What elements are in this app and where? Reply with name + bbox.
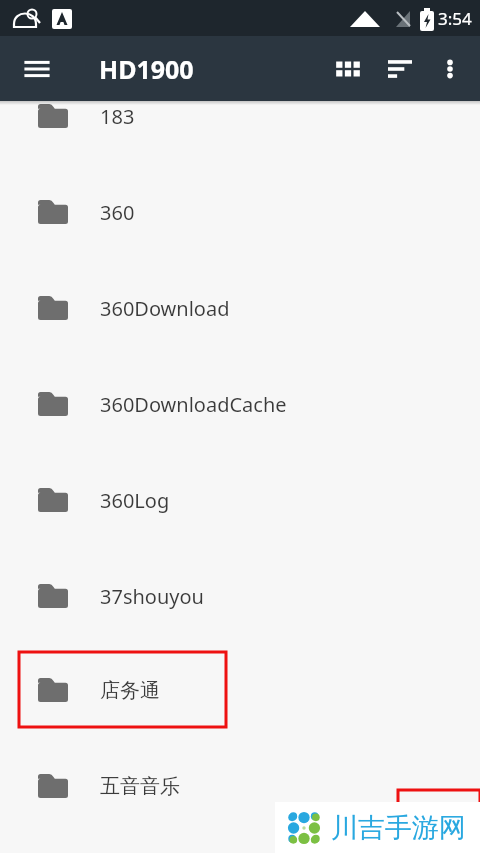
button[interactable]: Open navigation drawer: [13, 45, 61, 93]
staticText: 五音音乐: [100, 774, 180, 799]
button[interactable]: 店务通: [0, 642, 480, 738]
staticText: 360DownloadCache: [100, 391, 287, 418]
staticText: 183: [100, 103, 135, 130]
staticText: 360Log: [100, 487, 170, 514]
staticText: 川吉手游网: [331, 811, 466, 845]
staticText: 360: [100, 199, 135, 226]
button[interactable]: 360: [0, 164, 480, 260]
staticText: 3:54: [438, 7, 472, 30]
button[interactable]: 五音音乐: [0, 738, 480, 834]
staticText: 360Download: [100, 295, 230, 322]
button[interactable]: Sort: [374, 43, 426, 95]
button[interactable]: 360DownloadCache: [0, 356, 480, 452]
button[interactable]: 183: [0, 68, 480, 164]
button[interactable]: 360Download: [0, 260, 480, 356]
button[interactable]: 37shouyou: [0, 548, 480, 644]
button[interactable]: More options: [426, 45, 474, 93]
staticText: 37shouyou: [100, 583, 204, 610]
button[interactable]: 360Log: [0, 452, 480, 548]
button[interactable]: Grid view: [322, 43, 374, 95]
staticText: HD1900: [99, 52, 194, 86]
staticText: 店务通: [100, 678, 160, 703]
